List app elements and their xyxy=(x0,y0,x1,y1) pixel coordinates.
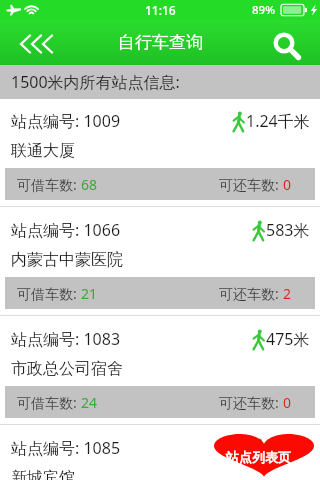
staticText: 可还车数: xyxy=(219,175,283,194)
staticText: 站点编号: 1066 xyxy=(11,219,121,241)
button[interactable]: 站点列表页 xyxy=(210,431,316,477)
button[interactable]: 站点编号: 1066 xyxy=(0,208,320,317)
staticText: 68 xyxy=(81,175,98,194)
staticText: 0 xyxy=(283,175,292,194)
staticText: 可借车数: xyxy=(17,284,81,303)
button[interactable]: 站点编号: 1085 xyxy=(0,426,320,480)
staticText: 583米 xyxy=(266,219,310,241)
staticText: 站点编号: 1009 xyxy=(11,110,121,132)
staticText: 24 xyxy=(81,393,98,412)
staticText: 可借车数: xyxy=(17,393,81,412)
staticText: 1500米内所有站点信息: xyxy=(11,71,180,93)
staticText: 可还车数: xyxy=(219,393,283,412)
staticText: 0 xyxy=(283,393,292,412)
staticText: 21 xyxy=(81,284,98,303)
staticText: 站点列表页 xyxy=(226,449,291,465)
staticText: 可还车数: xyxy=(219,284,283,303)
staticText: 联通大厦 xyxy=(11,141,75,161)
staticText: 可借车数: xyxy=(17,175,81,194)
staticText: 新城宾馆 xyxy=(11,468,75,480)
staticText: 站点编号: 1083 xyxy=(11,328,121,350)
staticText: 内蒙古中蒙医院 xyxy=(11,250,123,270)
button[interactable]: Search xyxy=(264,20,320,65)
staticText: 475米 xyxy=(266,328,310,350)
staticText: 站点编号: 1085 xyxy=(11,437,121,459)
staticText: 683米 xyxy=(266,437,310,459)
button[interactable]: 站点编号: 1009 xyxy=(0,99,320,208)
staticText: 自行车查询 xyxy=(118,32,203,53)
staticText: 1.24千米 xyxy=(246,110,310,132)
staticText: 市政总公司宿舍 xyxy=(11,359,123,379)
staticText: 11:16 xyxy=(145,2,176,18)
staticText: 2 xyxy=(283,284,292,303)
button[interactable]: 站点编号: 1083 xyxy=(0,317,320,426)
button[interactable]: Back xyxy=(0,20,62,65)
staticText: 89% xyxy=(252,2,275,18)
